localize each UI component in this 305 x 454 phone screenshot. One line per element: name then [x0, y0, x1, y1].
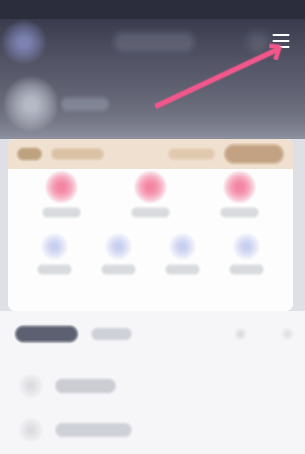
button[interactable]: Menu — [262, 24, 300, 58]
